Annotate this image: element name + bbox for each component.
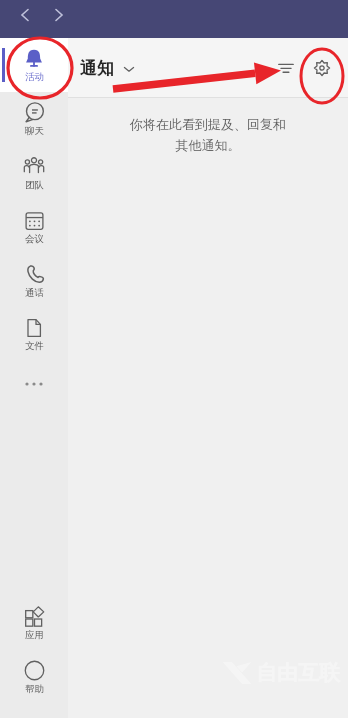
button[interactable]: Back [10, 0, 40, 30]
button[interactable]: 会议 [0, 200, 68, 254]
button[interactable]: Settings [308, 54, 336, 82]
button[interactable]: Filter [272, 54, 300, 82]
staticText: 通话 [25, 287, 44, 299]
button[interactable]: 文件 [0, 308, 68, 362]
button[interactable]: 团队 [0, 146, 68, 200]
staticText: 应用 [25, 629, 44, 641]
staticText: 文件 [25, 340, 44, 352]
staticText: 通知 [80, 58, 114, 79]
staticText: 你将在此看到提及、回复和 其他通知。 [92, 116, 324, 154]
button[interactable]: 活动 [0, 38, 68, 92]
staticText: 活动 [25, 71, 44, 83]
staticText: 会议 [25, 233, 44, 245]
button[interactable]: 聊天 [0, 92, 68, 146]
button[interactable]: 通话 [0, 254, 68, 308]
staticText: 聊天 [25, 125, 44, 137]
button[interactable]: 帮助 [0, 650, 68, 704]
button[interactable]: 应用 [0, 596, 68, 650]
staticText: 帮助 [25, 683, 44, 695]
staticText: 团队 [25, 179, 44, 191]
button[interactable]: Forward [44, 0, 74, 30]
button[interactable]: 通知 [80, 58, 135, 79]
button[interactable]: More [0, 362, 68, 406]
